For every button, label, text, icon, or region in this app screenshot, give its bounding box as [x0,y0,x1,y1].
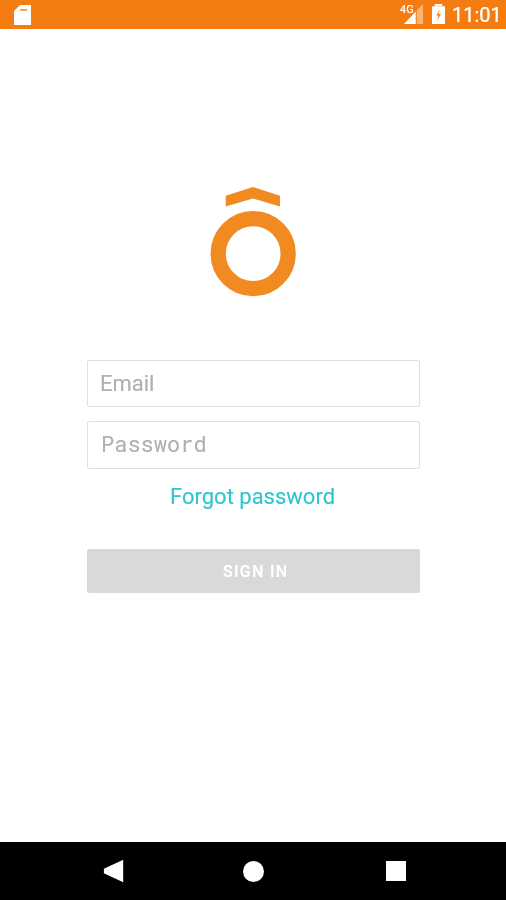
button[interactable]: Recents [367,842,425,900]
button[interactable]: SIGN IN [87,549,420,593]
button[interactable]: Forgot password [160,483,346,511]
staticText: SIGN IN [223,562,289,581]
staticText: Forgot password [170,484,336,510]
button[interactable]: Email [87,360,420,407]
staticText: 4G [400,3,414,16]
staticText: Password [101,429,207,458]
staticText: Email [100,371,155,397]
button[interactable]: Password [87,421,420,469]
button[interactable]: Home [224,842,282,900]
staticText: 11:01 [452,3,502,26]
button[interactable]: Back [83,842,141,900]
